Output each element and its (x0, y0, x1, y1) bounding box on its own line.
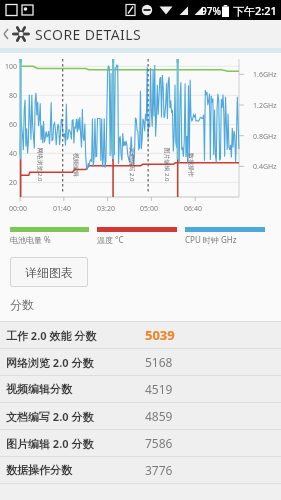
staticText: 详细图表 (25, 265, 73, 280)
staticText: 工作 2.0 效能 分数 (6, 328, 97, 343)
staticText: 5168 (145, 354, 173, 370)
staticText: 01:40 (53, 204, 71, 214)
button[interactable]: 数据操作分数 (0, 457, 281, 483)
staticText: 视频编辑 (72, 153, 80, 177)
staticText: 网络浏览 2.0 (35, 147, 43, 182)
staticText: 视频编辑分数 (6, 382, 72, 396)
button[interactable]: 图片编辑 2.0 分数 (0, 430, 281, 456)
staticText: 40 (0, 149, 17, 159)
staticText: 电池电量 % (10, 234, 51, 245)
staticText: 7586 (145, 435, 173, 451)
staticText: 下午2:21 (233, 3, 277, 18)
staticText: 00:00 (9, 204, 27, 214)
staticText: 1.6GHz (253, 70, 277, 80)
staticText: 60 (0, 120, 17, 130)
staticText: 80 (0, 91, 17, 101)
staticText: 20 (0, 178, 17, 188)
staticText: 05:00 (140, 204, 158, 214)
staticText: 4859 (145, 408, 173, 424)
staticText: 温度 °C (97, 234, 124, 245)
staticText: 分数 (10, 297, 34, 312)
staticText: 100 (0, 62, 17, 72)
staticText: 0.4GHz (253, 162, 277, 172)
button[interactable]: Back (0, 20, 281, 48)
button[interactable]: 网络浏览 2.0 分数 (0, 349, 281, 375)
staticText: 网络浏览 2.0 分数 (6, 355, 94, 370)
staticText: 数据操作分数 (6, 463, 72, 477)
staticText: 5039 (145, 326, 175, 344)
staticText: 03:20 (97, 204, 115, 214)
button[interactable]: 工作 2.0 效能 分数 (0, 322, 281, 348)
staticText: CPU 时钟 GHz (185, 234, 237, 245)
staticText: 06:40 (184, 204, 202, 214)
staticText: 97% (201, 4, 221, 18)
staticText: 3776 (145, 462, 173, 478)
staticText: 0.8GHz (253, 132, 277, 142)
staticText: 文档编写 2.0 分数 (6, 409, 94, 424)
button[interactable]: 视频编辑分数 (0, 376, 281, 402)
staticText: 数据操作 (187, 153, 195, 177)
button[interactable]: 文档编写 2.0 分数 (0, 403, 281, 429)
staticText: SCORE DETAILS (35, 25, 142, 44)
staticText: 1.2GHz (253, 101, 277, 111)
staticText: 图片编辑 2.0 分数 (6, 436, 94, 451)
staticText: 图片编辑 2.0 (162, 147, 170, 182)
staticText: 4519 (145, 381, 173, 397)
button[interactable]: 详细图表 (10, 257, 88, 287)
staticText: 文档编写 2.0 (127, 147, 135, 182)
